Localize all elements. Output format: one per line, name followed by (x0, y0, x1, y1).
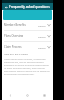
button[interactable]: Recents (36, 91, 53, 100)
staticText: Details (38, 35, 46, 38)
staticText: Lorem ipsum dolor sit amet, consectetur … (4, 58, 51, 76)
staticText: Frequently asked questions (9, 5, 50, 9)
staticText: Details (38, 46, 46, 49)
staticText: Member Benefits (4, 23, 26, 27)
staticText: Plans Overview (4, 34, 24, 38)
staticText: Details (38, 24, 46, 27)
button[interactable]: Home (19, 91, 36, 100)
button[interactable]: Back (3, 4, 9, 10)
button[interactable]: Plans Overview (2, 31, 53, 41)
staticText: How do I file a claim? (4, 52, 29, 55)
button[interactable]: Back (2, 91, 19, 100)
staticText: Claim Process (4, 45, 22, 49)
button[interactable]: Claim Process (2, 42, 53, 52)
button[interactable]: Member Benefits (2, 20, 53, 30)
